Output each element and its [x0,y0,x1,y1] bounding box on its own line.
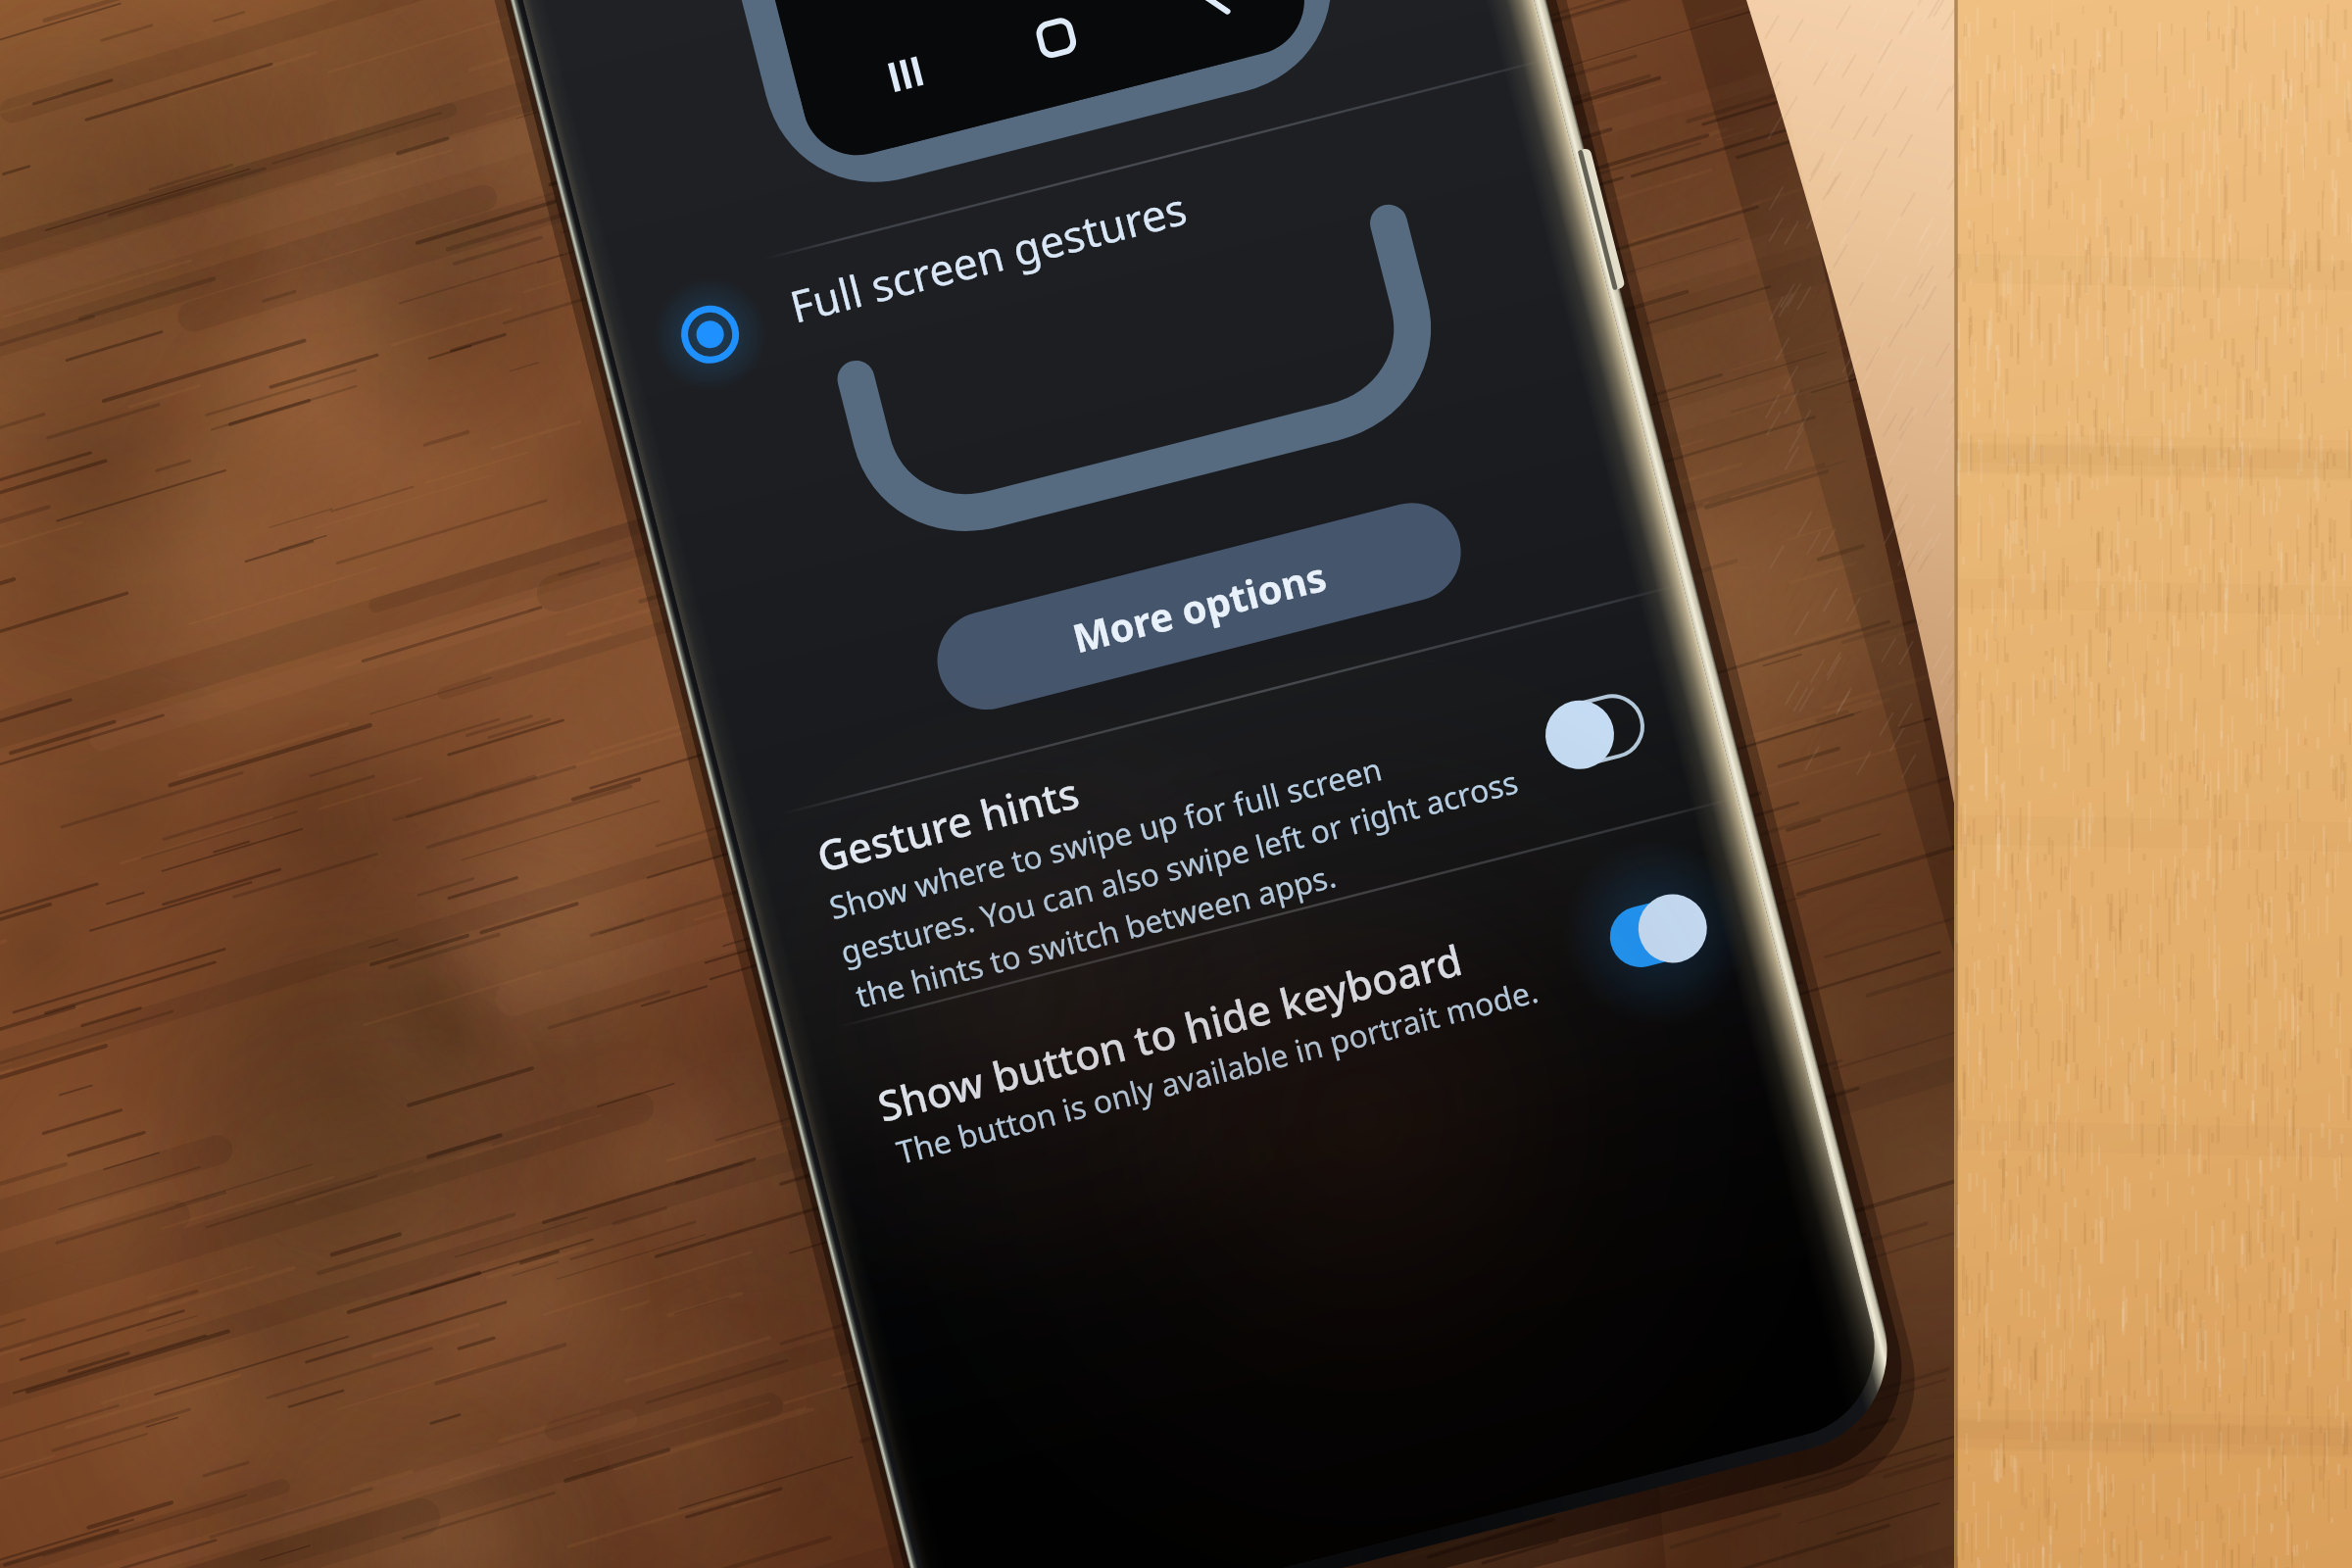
button[interactable]: More options [921,534,1490,686]
button[interactable]: Show button to hide keyboard toggle [1583,857,1730,1004]
button[interactable]: Gesture hints toggle [1529,657,1676,804]
button[interactable]: Full screen gestures [588,245,1225,431]
button[interactable]: Gesture hints [804,755,1529,990]
button[interactable]: Show button to hide keyboard [843,990,1568,1186]
